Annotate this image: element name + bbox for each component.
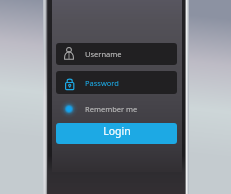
button[interactable]: Password bbox=[56, 71, 177, 94]
button[interactable]: Remember me bbox=[56, 98, 177, 119]
staticText: Password bbox=[85, 78, 119, 88]
button[interactable]: Login bbox=[56, 123, 177, 144]
button[interactable]: Username bbox=[56, 43, 177, 65]
staticText: Login bbox=[103, 124, 131, 138]
staticText: Username bbox=[85, 49, 122, 59]
staticText: Remember me bbox=[85, 104, 138, 114]
